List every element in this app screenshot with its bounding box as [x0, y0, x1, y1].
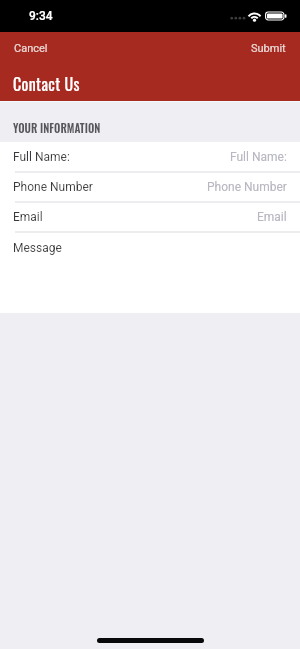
button[interactable]: Cancel — [0, 36, 62, 61]
button[interactable]: Phone Number — [0, 172, 300, 202]
button[interactable]: Submit — [237, 36, 300, 61]
staticText: 9:34 — [29, 9, 53, 23]
staticText: YOUR INFORMATION — [13, 120, 101, 136]
staticText: Cancel — [14, 42, 48, 55]
staticText: Full Name: — [230, 150, 287, 164]
staticText: Phone Number — [207, 180, 287, 194]
staticText: Submit — [251, 42, 286, 55]
other: Cellular signal — [230, 8, 244, 24]
other: Battery full — [265, 8, 287, 24]
button[interactable]: Full Name: — [0, 142, 300, 172]
button[interactable]: Email — [0, 202, 300, 232]
staticText: Message — [13, 241, 62, 255]
button[interactable]: Message — [0, 232, 300, 313]
staticText: Full Name: — [13, 150, 70, 164]
staticText: Phone Number — [13, 180, 93, 194]
other: Wi-Fi — [248, 8, 261, 24]
staticText: Email — [257, 210, 287, 224]
staticText: Email — [13, 210, 43, 224]
staticText: Contact Us — [13, 72, 80, 96]
